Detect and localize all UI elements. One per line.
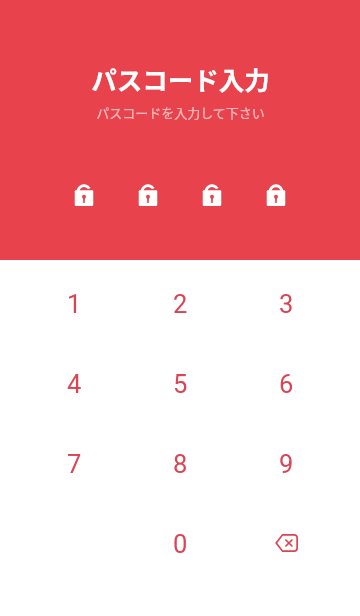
staticText: 4 [67,369,82,399]
staticText: パスコード入力 [91,60,270,97]
staticText: 8 [173,449,188,479]
button[interactable]: 8 [127,424,233,504]
staticText: 0 [173,529,188,559]
button[interactable]: 7 [21,424,127,504]
staticText: パスコードを入力して下さい [96,103,265,122]
staticText: 3 [279,289,294,319]
button[interactable]: 0 [127,504,233,584]
staticText: 9 [279,449,294,479]
button[interactable]: 1 [21,264,127,344]
button[interactable]: Backspace [233,504,339,584]
staticText: 2 [173,289,188,319]
staticText: 6 [279,369,294,399]
staticText: 1 [67,289,82,319]
button[interactable]: 5 [127,344,233,424]
staticText: 5 [173,369,188,399]
button[interactable]: 3 [233,264,339,344]
button[interactable]: 4 [21,344,127,424]
button[interactable]: 2 [127,264,233,344]
staticText: 7 [67,449,82,479]
button[interactable]: 6 [233,344,339,424]
button[interactable]: 9 [233,424,339,504]
